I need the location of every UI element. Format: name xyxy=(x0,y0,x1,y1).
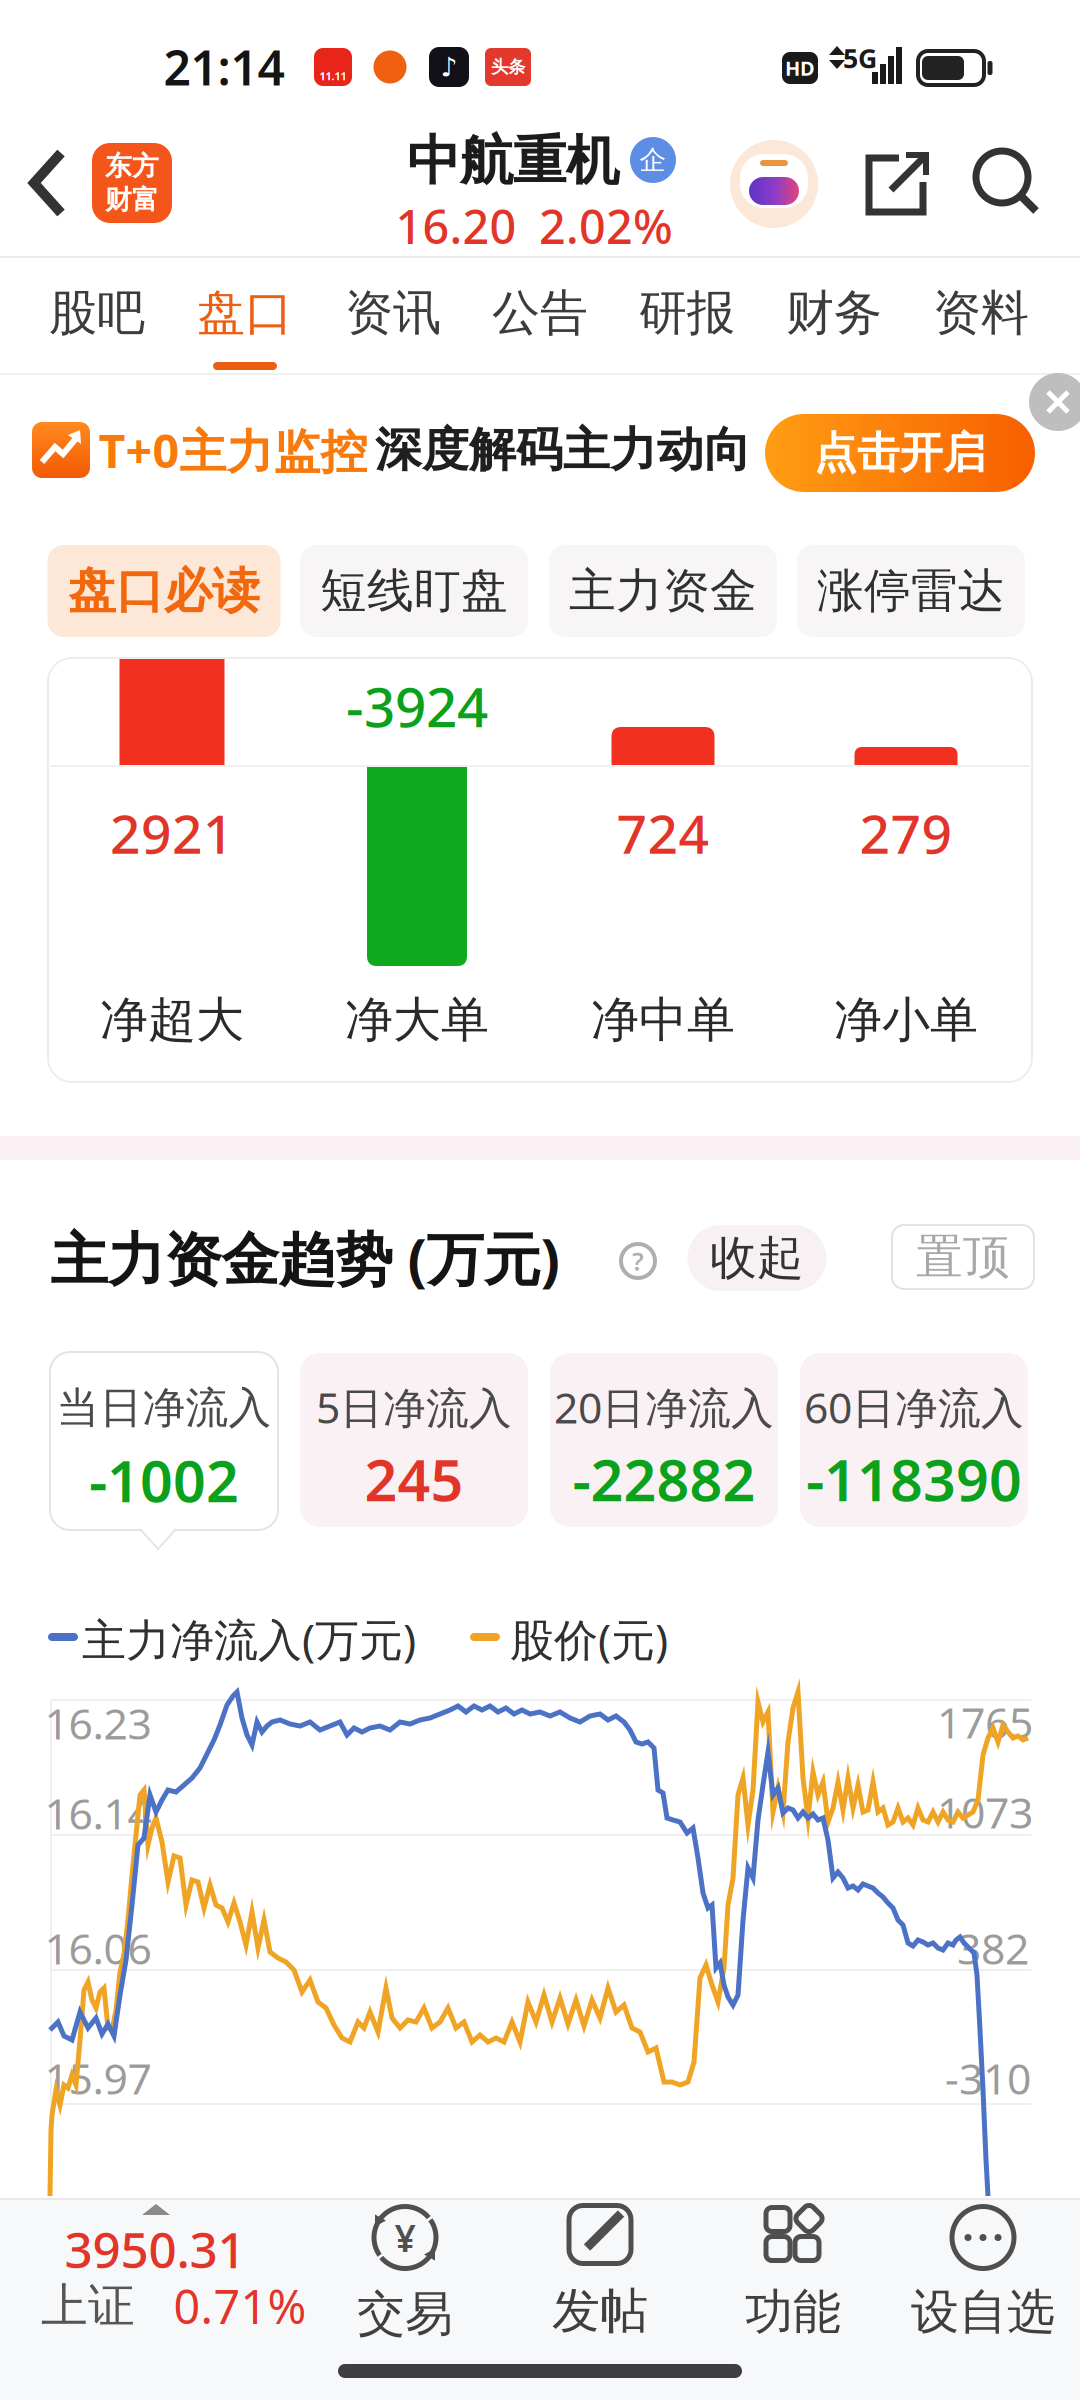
staticText: 11.11 xyxy=(319,69,346,83)
staticText: 主力净流入(万元) xyxy=(82,1610,416,1668)
staticText: 研报 xyxy=(639,283,735,342)
staticText: 发帖 xyxy=(552,2281,648,2340)
button[interactable]: Back xyxy=(29,150,67,216)
staticText: 点击开启 xyxy=(814,427,986,479)
staticText: 东方 xyxy=(105,150,159,182)
staticText: 上证 xyxy=(41,2277,135,2335)
staticText: 60日净流入 xyxy=(804,1379,1024,1435)
staticText: -3924 xyxy=(346,670,488,742)
staticText: 16.23 xyxy=(44,1695,151,1751)
button[interactable]: 60日净流入 xyxy=(800,1353,1028,1527)
staticText: 16.20 xyxy=(395,195,516,257)
staticText: ? xyxy=(632,1244,644,1278)
button[interactable]: 资料 xyxy=(907,263,1055,363)
staticText: 财务 xyxy=(786,283,882,342)
button[interactable]: 盘口 xyxy=(171,263,319,363)
staticText: HD xyxy=(785,55,815,81)
staticText: 主力资金 xyxy=(569,562,757,620)
button[interactable]: 设自选 xyxy=(911,2206,1055,2341)
staticText: 头条 xyxy=(491,56,525,78)
staticText: 短线盯盘 xyxy=(320,562,508,620)
staticText: 279 xyxy=(859,798,952,868)
staticText: 财富 xyxy=(105,183,159,216)
button[interactable]: 5日净流入 xyxy=(300,1353,528,1527)
staticText: 382 xyxy=(957,1920,1029,1976)
staticText: 资料 xyxy=(933,283,1029,342)
staticText: 主力资金趋势 (万元) xyxy=(50,1220,559,1296)
staticText: 16.14 xyxy=(44,1785,151,1841)
button[interactable]: 20日净流入 xyxy=(550,1353,778,1527)
staticText: 净超大 xyxy=(100,990,244,1049)
button[interactable]: 研报 xyxy=(613,263,761,363)
button[interactable]: Assistant xyxy=(730,140,818,228)
staticText: -1002 xyxy=(89,1442,239,1518)
button[interactable]: 公告 xyxy=(466,263,614,363)
staticText: 净大单 xyxy=(345,990,489,1049)
staticText: 净小单 xyxy=(834,990,978,1049)
staticText: 16.06 xyxy=(44,1920,151,1976)
staticText: 股吧 xyxy=(49,283,145,342)
staticText: ¥ xyxy=(394,2213,415,2262)
button[interactable]: Share xyxy=(865,154,927,216)
staticText: 2921 xyxy=(110,798,234,868)
staticText: 5日净流入 xyxy=(316,1379,512,1435)
button[interactable]: ¥ xyxy=(357,2204,453,2343)
button[interactable]: 主力资金 xyxy=(549,545,777,637)
staticText: -310 xyxy=(945,2050,1031,2106)
staticText: 涨停雷达 xyxy=(817,562,1005,620)
staticText: 2.02% xyxy=(539,195,673,257)
staticText: 股价(元) xyxy=(510,1610,668,1668)
button[interactable]: 盘口必读 xyxy=(47,545,280,637)
staticText: 收起 xyxy=(710,1229,804,1287)
staticText: 企 xyxy=(639,144,666,176)
staticText: 15.97 xyxy=(44,2050,151,2106)
button[interactable]: 短线盯盘 xyxy=(300,545,528,637)
button[interactable]: 置顶 xyxy=(892,1225,1034,1289)
staticText: 深度解码主力动向 xyxy=(375,421,751,479)
button[interactable]: Close xyxy=(1029,373,1080,431)
button[interactable]: 3950.31 xyxy=(12,2203,302,2363)
staticText: 设自选 xyxy=(911,2282,1055,2341)
button[interactable]: 当日净流入 xyxy=(50,1352,278,1530)
staticText: -22882 xyxy=(572,1441,755,1517)
staticText: 交易 xyxy=(357,2284,453,2343)
staticText: 中航重机 xyxy=(407,128,619,194)
staticText: ♪ xyxy=(440,52,457,82)
staticText: 置顶 xyxy=(916,1228,1010,1286)
staticText: 公告 xyxy=(492,283,588,342)
staticText: 功能 xyxy=(745,2282,841,2341)
button[interactable]: 点击开启 xyxy=(765,414,1035,492)
button[interactable]: 涨停雷达 xyxy=(797,545,1025,637)
staticText: 20日净流入 xyxy=(554,1379,774,1435)
button[interactable]: 资讯 xyxy=(319,263,467,363)
staticText: 净中单 xyxy=(591,990,735,1049)
staticText: 1073 xyxy=(937,1784,1033,1840)
staticText: T+0主力监控 xyxy=(98,419,367,481)
staticText: 724 xyxy=(616,798,709,868)
button[interactable]: 财务 xyxy=(760,263,908,363)
button[interactable]: 收起 xyxy=(687,1225,826,1291)
staticText: 当日净流入 xyxy=(56,1382,271,1434)
staticText: 3950.31 xyxy=(64,2216,245,2282)
staticText: 资讯 xyxy=(345,283,441,342)
staticText: 盘口必读 xyxy=(68,561,260,620)
staticText: 0.71% xyxy=(173,2275,306,2337)
staticText: -118390 xyxy=(806,1441,1022,1517)
button[interactable]: 功能 xyxy=(745,2202,841,2341)
staticText: 盘口 xyxy=(197,283,293,342)
staticText: 5G xyxy=(843,40,877,76)
button[interactable]: 发帖 xyxy=(552,2203,648,2340)
staticText: 21:14 xyxy=(163,35,284,99)
button[interactable]: Help xyxy=(618,1241,658,1281)
staticText: 245 xyxy=(364,1441,463,1517)
button[interactable]: Search xyxy=(976,153,1040,215)
staticText: 1765 xyxy=(937,1694,1033,1750)
button[interactable]: 股吧 xyxy=(23,263,171,363)
